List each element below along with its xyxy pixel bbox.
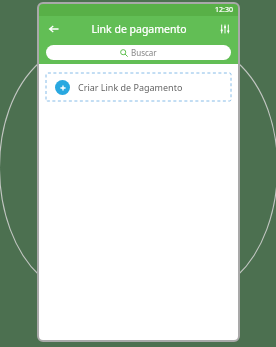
button[interactable]: Filter <box>217 21 233 37</box>
button[interactable]: Criar Link de Pagamento <box>46 73 231 101</box>
button[interactable]: Back <box>45 20 63 38</box>
staticText: Link de pagamento <box>91 22 187 36</box>
staticText: 12:30 <box>215 5 233 15</box>
staticText: Buscar <box>131 47 157 58</box>
button[interactable]: Buscar <box>46 45 231 60</box>
staticText: Criar Link de Pagamento <box>78 81 183 93</box>
